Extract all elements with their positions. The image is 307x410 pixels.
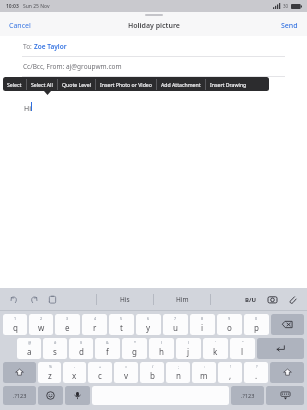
button[interactable]: :: [192, 362, 216, 383]
button[interactable]: 3: [55, 314, 80, 335]
staticText: 2: [40, 316, 43, 321]
button[interactable]: *: [122, 338, 147, 359]
button[interactable]: (: [149, 338, 174, 359]
button[interactable]: Dictate: [65, 386, 90, 405]
staticText: Select: [7, 81, 22, 88]
staticText: Him: [176, 295, 189, 304]
button[interactable]: !: [218, 362, 242, 383]
button[interactable]: Shift: [3, 362, 36, 383]
button[interactable]: 9: [217, 314, 242, 335]
staticText: @: [28, 340, 32, 345]
button[interactable]: ': [203, 338, 228, 359]
staticText: %: [49, 364, 52, 369]
staticText: p: [254, 322, 259, 333]
button[interactable]: -: [63, 362, 86, 383]
staticText: w: [38, 322, 45, 333]
staticText: $: [80, 340, 83, 345]
staticText: 6: [147, 316, 150, 321]
staticText: 3: [66, 316, 69, 321]
button[interactable]: %: [38, 362, 61, 383]
button[interactable]: Backspace: [271, 314, 304, 335]
button[interactable]: 6: [136, 314, 161, 335]
button[interactable]: /: [140, 362, 164, 383]
button[interactable]: Shift: [270, 362, 304, 383]
button[interactable]: Hide keyboard: [266, 386, 304, 405]
button[interactable]: ?: [244, 362, 268, 383]
button[interactable]: Select: [3, 77, 26, 91]
button[interactable]: Attach: [286, 293, 299, 306]
staticText: ": [242, 340, 244, 345]
staticText: Select All: [31, 81, 53, 88]
staticText: q: [13, 322, 18, 333]
staticText: n: [176, 370, 181, 381]
button[interactable]: =: [114, 362, 138, 383]
staticText: +: [99, 364, 102, 369]
staticText: -: [74, 364, 76, 369]
button[interactable]: 8: [190, 314, 215, 335]
button[interactable]: Emoji: [38, 386, 63, 405]
staticText: &: [106, 340, 109, 345]
button[interactable]: 7: [163, 314, 188, 335]
staticText: Quote Level: [62, 81, 91, 88]
button[interactable]: ;: [166, 362, 190, 383]
button[interactable]: $: [69, 338, 93, 359]
staticText: B/U: [245, 296, 257, 304]
staticText: Holiday picture: [128, 21, 180, 31]
staticText: 30: [283, 3, 289, 9]
staticText: 9: [228, 316, 231, 321]
staticText: u: [173, 322, 178, 333]
staticText: ,: [229, 370, 232, 381]
staticText: v: [124, 370, 129, 381]
button[interactable]: Return: [257, 338, 304, 359]
button[interactable]: Insert Photo or Video: [96, 77, 156, 91]
staticText: (: [161, 340, 163, 345]
button[interactable]: Cancel: [0, 17, 40, 35]
button[interactable]: To:: [0, 36, 307, 56]
button[interactable]: ": [230, 338, 255, 359]
staticText: ': [215, 340, 216, 345]
staticText: Zoe Taylor: [34, 42, 67, 51]
button[interactable]: Undo: [8, 293, 21, 306]
staticText: a: [27, 346, 32, 357]
button[interactable]: &: [95, 338, 120, 359]
button[interactable]: .?123: [231, 386, 264, 405]
staticText: .: [255, 370, 258, 381]
staticText: Sun 25 Nov: [23, 3, 50, 10]
staticText: s: [53, 346, 57, 357]
button[interactable]: Add Attachment: [157, 77, 205, 91]
button[interactable]: 0: [244, 314, 269, 335]
button[interactable]: Send: [272, 17, 307, 35]
staticText: .?123: [13, 392, 27, 399]
staticText: *: [134, 340, 136, 345]
staticText: e: [65, 322, 70, 333]
button[interactable]: +: [88, 362, 112, 383]
button[interactable]: @: [17, 338, 41, 359]
button[interactable]: Camera: [266, 293, 279, 306]
staticText: h: [159, 346, 164, 357]
button[interactable]: #: [43, 338, 67, 359]
staticText: y: [146, 322, 151, 333]
button[interactable]: 1: [3, 314, 27, 335]
button[interactable]: B/U: [243, 294, 259, 306]
button[interactable]: Select All: [27, 77, 57, 91]
button[interactable]: .?123: [3, 386, 36, 405]
staticText: Insert Photo or Video: [100, 81, 152, 88]
staticText: b: [150, 370, 155, 381]
staticText: r: [93, 322, 97, 333]
button[interactable]: 4: [82, 314, 107, 335]
staticText: o: [227, 322, 232, 333]
staticText: .?123: [241, 392, 255, 399]
button[interactable]: His: [97, 295, 153, 304]
button[interactable]: Paste: [46, 293, 59, 306]
staticText: 10:03: [6, 3, 19, 10]
button[interactable]: 5: [109, 314, 134, 335]
button[interactable]: Cc/Bcc, From: aj@groupwm.com: [0, 57, 307, 76]
button[interactable]: ): [176, 338, 201, 359]
button[interactable]: Insert Drawing: [206, 77, 251, 91]
button[interactable]: 2: [29, 314, 53, 335]
button[interactable]: Quote Level: [58, 77, 95, 91]
button[interactable]: Him: [154, 295, 210, 304]
button[interactable]: Redo: [27, 293, 40, 306]
